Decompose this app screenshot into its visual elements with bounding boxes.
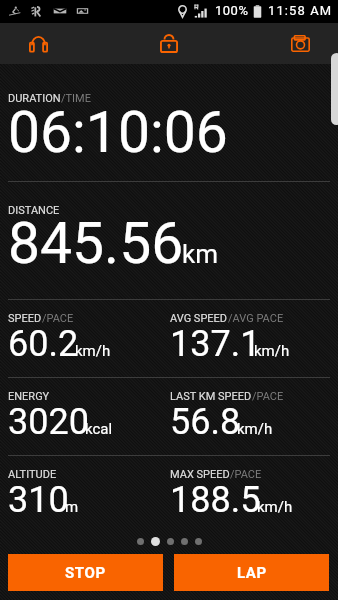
staticText: 845.56 <box>8 210 184 277</box>
staticText: 60.2 <box>8 323 79 365</box>
staticText: /PACE <box>252 390 284 403</box>
button[interactable]: Music <box>9 23 67 64</box>
staticText: m <box>65 498 79 516</box>
staticText: 56.8 <box>170 401 241 443</box>
staticText: 11:58 AM <box>268 3 333 18</box>
staticText: ALTITUDE <box>8 468 57 481</box>
staticText: MAX SPEED <box>170 468 230 481</box>
button[interactable]: STOP <box>8 554 163 591</box>
staticText: DURATION <box>8 92 61 105</box>
staticText: km/h <box>237 420 273 438</box>
staticText: kcal <box>85 420 113 438</box>
staticText: SPEED <box>8 312 42 325</box>
staticText: STOP <box>65 564 106 582</box>
staticText: LAP <box>237 564 267 582</box>
staticText: ENERGY <box>8 390 50 403</box>
button[interactable]: Lock <box>140 23 198 64</box>
staticText: km/h <box>75 342 111 360</box>
staticText: 310 <box>8 479 69 521</box>
staticText: km/h <box>257 498 293 516</box>
staticText: km/h <box>254 342 290 360</box>
staticText: 100% <box>215 3 249 18</box>
staticText: 188.5 <box>170 479 261 521</box>
staticText: /TIME <box>61 92 91 105</box>
staticText: 3020 <box>8 401 89 443</box>
staticText: AVG SPEED <box>170 312 228 325</box>
staticText: DISTANCE <box>8 204 60 217</box>
staticText: km <box>182 239 218 269</box>
button[interactable]: Camera <box>271 23 329 64</box>
staticText: /PACE <box>230 468 262 481</box>
staticText: 137.1 <box>170 323 261 365</box>
button[interactable]: LAP <box>174 554 329 591</box>
staticText: LAST KM SPEED <box>170 390 252 403</box>
staticText: /AVG PACE <box>228 312 284 325</box>
staticText: /PACE <box>42 312 74 325</box>
staticText: 06:10:06 <box>8 99 228 166</box>
